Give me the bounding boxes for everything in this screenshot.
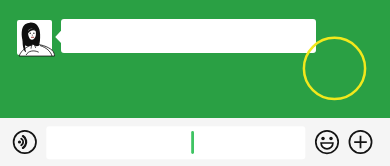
button[interactable]: More options [346, 128, 374, 156]
button[interactable]: Voice message [11, 128, 39, 156]
button[interactable]: Emoji [313, 128, 341, 156]
